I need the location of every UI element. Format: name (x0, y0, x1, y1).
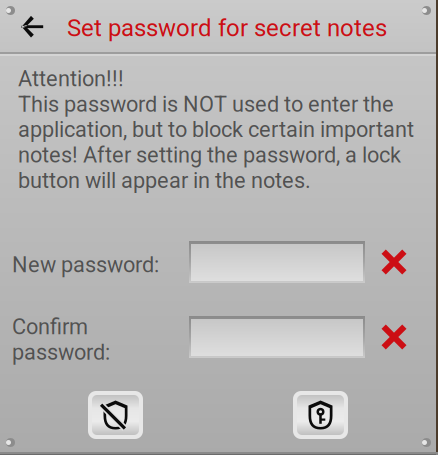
staticText: New password: (12, 252, 159, 277)
button[interactable]: Back (7, 1, 59, 53)
button[interactable]: Remove password (88, 391, 143, 439)
button[interactable]: Set password (293, 391, 348, 439)
button[interactable]: Clear new password (372, 240, 416, 284)
staticText: Set password for secret notes (67, 14, 387, 42)
staticText: Attention!!! This password is NOT used t… (18, 66, 414, 193)
button[interactable]: Clear confirm password (372, 315, 416, 359)
staticText: Confirm password: (12, 314, 110, 365)
